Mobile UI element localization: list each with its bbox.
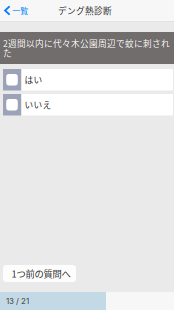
staticText: デング熱診断 xyxy=(58,4,112,17)
staticText: 1つ前の質問へ xyxy=(11,267,70,280)
staticText: 13 / 21 xyxy=(6,296,29,306)
button[interactable]: 一覧 xyxy=(0,0,34,21)
staticText: 2週間以内に代々木公園周辺で蚊に刺された xyxy=(3,37,170,59)
staticText: はい xyxy=(24,73,42,86)
staticText: いいえ xyxy=(24,98,51,111)
button[interactable]: はい xyxy=(0,69,174,90)
staticText: 一覧 xyxy=(12,5,28,16)
button[interactable]: いいえ xyxy=(0,94,174,115)
button[interactable]: 1つ前の質問へ xyxy=(3,265,76,282)
